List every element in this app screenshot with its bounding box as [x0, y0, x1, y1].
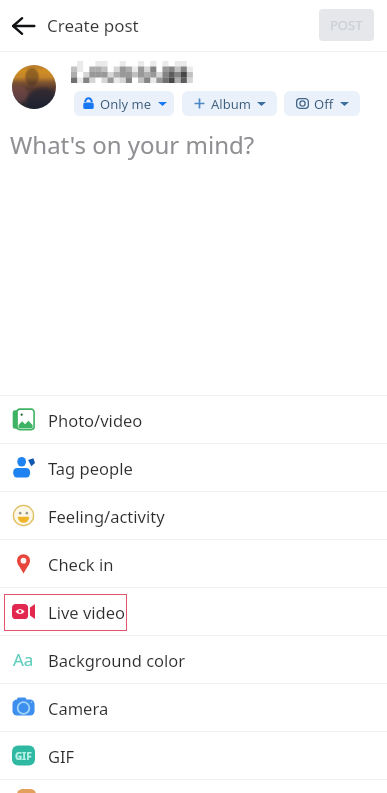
- staticText: Tag people: [48, 457, 133, 479]
- staticText: Live video: [48, 601, 125, 623]
- staticText: Off: [314, 95, 334, 113]
- button[interactable]: Off: [284, 91, 360, 116]
- button[interactable]: POST: [319, 9, 374, 41]
- staticText: Only me: [100, 95, 152, 113]
- button[interactable]: Camera: [0, 684, 387, 731]
- button[interactable]: Album: [182, 91, 277, 116]
- button[interactable]: Aa: [0, 636, 387, 683]
- button[interactable]: Profile picture: [12, 65, 56, 109]
- staticText: Check in: [48, 553, 114, 575]
- staticText: Feeling/activity: [48, 505, 165, 527]
- button[interactable]: Feeling/activity: [0, 492, 387, 539]
- staticText: Camera: [48, 697, 109, 719]
- button[interactable]: Photo/video: [0, 396, 387, 443]
- staticText: GIF: [15, 749, 32, 763]
- button[interactable]: Tag people: [0, 444, 387, 491]
- staticText: Background color: [48, 649, 186, 671]
- staticText: GIF: [48, 745, 75, 767]
- staticText: POST: [330, 16, 363, 34]
- staticText: Aa: [13, 648, 34, 671]
- button[interactable]: Host a Q&A: [0, 780, 387, 793]
- staticText: What's on your mind?: [10, 128, 255, 161]
- staticText: Album: [211, 95, 251, 113]
- staticText: Create post: [47, 14, 139, 37]
- staticText: Photo/video: [48, 409, 143, 431]
- button[interactable]: Live video: [0, 588, 387, 635]
- button[interactable]: Check in: [0, 540, 387, 587]
- button[interactable]: GIF: [0, 732, 387, 779]
- button[interactable]: Back: [4, 7, 42, 45]
- button[interactable]: Only me: [74, 91, 174, 116]
